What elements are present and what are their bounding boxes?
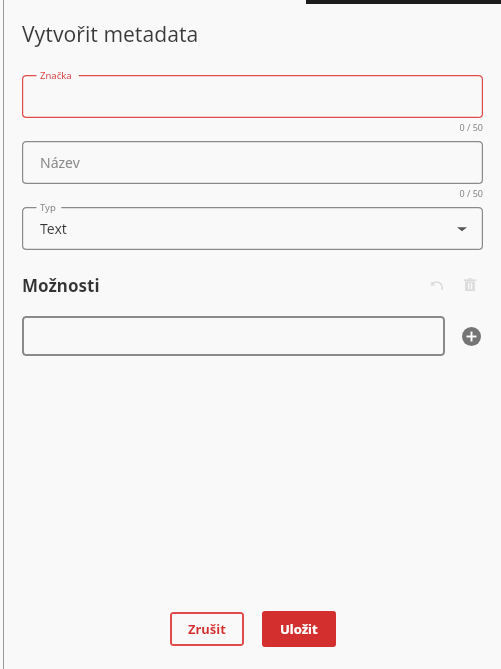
staticText: Značka xyxy=(40,69,72,82)
staticText: Zrušit xyxy=(188,620,226,638)
staticText: 0 / 50 xyxy=(459,121,483,133)
button[interactable]: Add option xyxy=(459,324,483,348)
staticText: 0 / 50 xyxy=(459,187,483,199)
staticText: Uložit xyxy=(280,620,318,638)
button[interactable]: Název xyxy=(22,141,483,184)
button[interactable]: Typ xyxy=(22,207,483,250)
staticText: Typ xyxy=(40,201,56,214)
staticText: Název xyxy=(40,153,80,172)
other: Open type menu xyxy=(453,220,471,238)
button[interactable]: Delete xyxy=(457,272,483,298)
button[interactable]: Značka xyxy=(22,75,483,118)
button[interactable]: Zrušit xyxy=(170,612,244,646)
staticText: Text xyxy=(40,219,67,238)
button[interactable]: Undo xyxy=(423,272,449,298)
staticText: Možnosti xyxy=(22,274,100,297)
staticText: Vytvořit metadata xyxy=(22,20,199,49)
button[interactable]: Uložit xyxy=(262,611,336,647)
button[interactable] xyxy=(22,316,445,356)
